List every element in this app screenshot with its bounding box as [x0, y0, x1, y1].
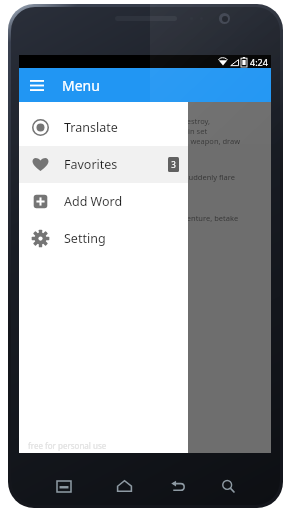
button[interactable]: Translate — [19, 109, 188, 146]
staticText: g by (in set — [169, 126, 208, 136]
staticText: 4:24 — [250, 56, 268, 68]
staticText: e of a weapon, draw — [169, 136, 241, 146]
button[interactable]: Home — [112, 474, 136, 498]
staticText: ase. suddenly flare — [169, 172, 235, 182]
staticText: art, venture, betake — [169, 213, 239, 223]
staticText: Favorites — [64, 156, 118, 173]
staticText: Add Word — [64, 193, 123, 210]
button[interactable]: Recent apps — [52, 474, 76, 498]
button[interactable]: Search — [216, 474, 240, 498]
staticText: Menu — [62, 76, 100, 95]
staticText: free for personal use — [28, 440, 107, 451]
staticText: Translate — [64, 119, 118, 136]
staticText: od. destroy, — [169, 116, 211, 126]
button[interactable]: Favorites — [19, 146, 188, 183]
button[interactable]: Back — [166, 474, 190, 498]
staticText: 3 — [171, 159, 176, 170]
staticText: Setting — [64, 230, 106, 247]
button[interactable]: Setting — [19, 220, 188, 257]
button[interactable]: Add Word — [19, 183, 188, 220]
button[interactable]: Open navigation drawer — [23, 71, 51, 99]
